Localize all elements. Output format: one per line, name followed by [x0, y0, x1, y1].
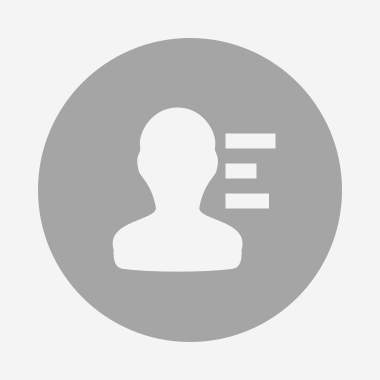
button[interactable]: Contact profile	[0, 0, 380, 380]
